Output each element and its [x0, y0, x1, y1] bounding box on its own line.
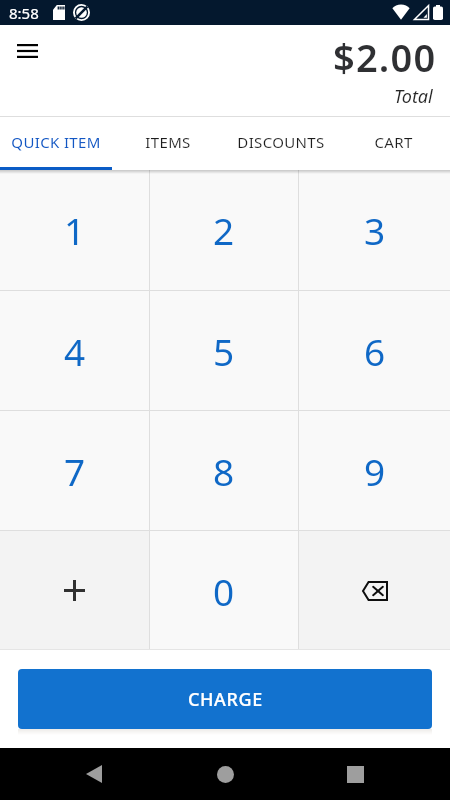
button[interactable]: 6: [299, 291, 450, 410]
staticText: ITEMS: [145, 132, 191, 152]
staticText: 7: [64, 446, 86, 496]
button[interactable]: Backspace: [299, 531, 450, 650]
staticText: 8: [213, 446, 235, 496]
staticText: Total: [394, 84, 433, 109]
button[interactable]: 3: [299, 170, 450, 290]
button[interactable]: 8: [150, 411, 298, 530]
button[interactable]: Recent apps: [331, 750, 379, 798]
staticText: DISCOUNTS: [237, 132, 325, 152]
staticText: QUICK ITEM: [11, 132, 101, 152]
button[interactable]: DISCOUNTS: [224, 116, 337, 170]
button[interactable]: Home: [201, 750, 249, 798]
button[interactable]: Menu: [6, 30, 48, 72]
button[interactable]: ITEMS: [112, 116, 224, 170]
staticText: 5: [213, 326, 235, 376]
button[interactable]: 7: [0, 411, 149, 530]
button[interactable]: CHARGE: [18, 669, 432, 729]
other: Add: [64, 580, 85, 601]
button[interactable]: 5: [150, 291, 298, 410]
staticText: $2.00: [333, 31, 437, 83]
staticText: 2: [213, 205, 235, 255]
button[interactable]: Add: [0, 531, 149, 650]
staticText: 4: [64, 326, 86, 376]
staticText: 8:58: [9, 3, 39, 23]
other: Backspace: [361, 581, 388, 601]
staticText: CART: [374, 132, 413, 152]
button[interactable]: 4: [0, 291, 149, 410]
button[interactable]: Back: [70, 750, 118, 798]
button[interactable]: CART: [337, 116, 450, 170]
button[interactable]: 0: [150, 531, 298, 650]
button[interactable]: 2: [150, 170, 298, 290]
staticText: 0: [213, 566, 235, 616]
button[interactable]: QUICK ITEM: [0, 116, 112, 170]
staticText: 3: [364, 205, 386, 255]
button[interactable]: 9: [299, 411, 450, 530]
button[interactable]: 1: [0, 170, 149, 290]
staticText: CHARGE: [188, 687, 263, 712]
staticText: 1: [64, 205, 86, 255]
staticText: 9: [364, 446, 386, 496]
staticText: 6: [364, 326, 386, 376]
